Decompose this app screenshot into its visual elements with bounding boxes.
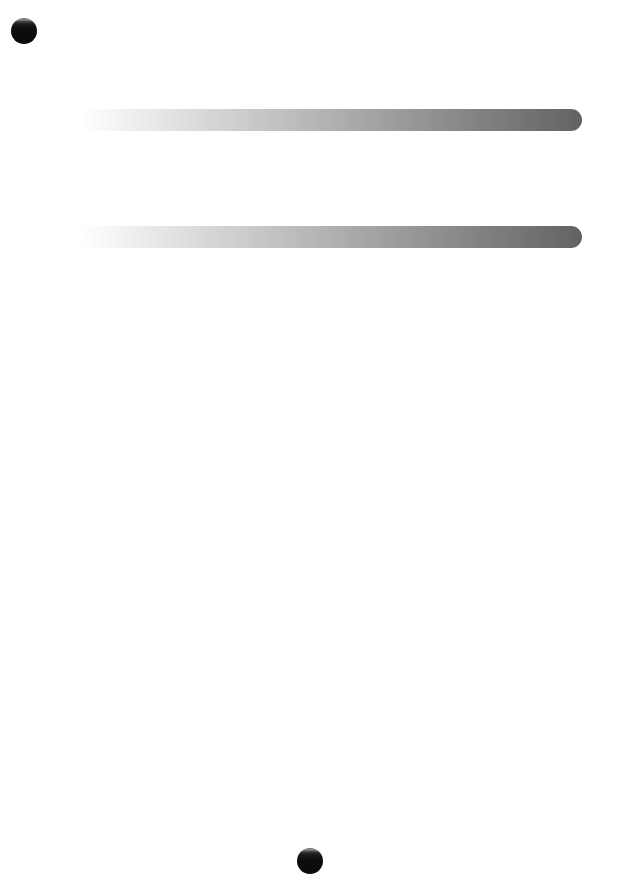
button[interactable]: Action (297, 848, 323, 874)
button[interactable]: Second item (80, 226, 582, 248)
button[interactable]: Menu (11, 18, 37, 44)
button[interactable]: First item (80, 109, 582, 131)
